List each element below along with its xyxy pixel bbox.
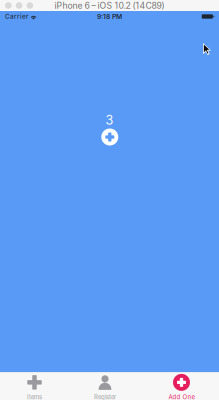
staticText: Items xyxy=(27,393,42,400)
staticText: Register xyxy=(94,393,116,400)
button[interactable]: Add one xyxy=(101,128,118,145)
staticText: Carrier xyxy=(5,13,28,20)
button[interactable]: Items xyxy=(0,372,69,400)
staticText: 9:18 PM xyxy=(97,12,122,21)
button[interactable]: Add One xyxy=(146,372,216,400)
staticText: 3 xyxy=(106,112,114,128)
staticText: Add One xyxy=(168,393,194,400)
button[interactable]: Register xyxy=(70,372,140,400)
staticText: iPhone 6 – iOS 10.2 (14C89) xyxy=(54,0,164,11)
